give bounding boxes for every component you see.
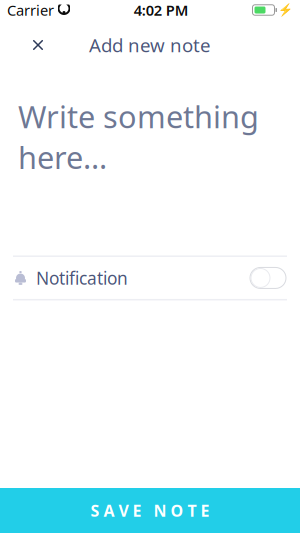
button[interactable]: S A V E N O T E — [0, 488, 300, 533]
staticText: 4:02 PM — [134, 0, 189, 20]
staticText: Add new note — [89, 33, 211, 57]
staticText: Notification — [36, 266, 128, 289]
button[interactable]: Close — [18, 27, 58, 63]
button[interactable]: Notification — [0, 257, 300, 299]
staticText: Carrier — [7, 0, 54, 20]
staticText: ⚡ — [278, 3, 293, 17]
staticText: S A V E N O T E — [90, 500, 209, 521]
staticText: Write something here... — [18, 96, 259, 177]
